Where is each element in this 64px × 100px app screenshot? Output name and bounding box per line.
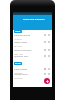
- staticText: Earlier: [15, 62, 21, 65]
- staticText: Weekly digest: [14, 41, 28, 44]
- staticText: Archive report: [14, 73, 28, 76]
- staticText: Monthly summary: [14, 49, 32, 52]
- staticText: Premium update: [14, 34, 31, 37]
- staticText: 12:30 AM: [14, 38, 23, 41]
- button[interactable]: Weekly digest: [13, 41, 52, 48]
- button[interactable]: Earlier: [14, 62, 22, 65]
- staticText: Yesterday: [14, 72, 23, 75]
- button[interactable]: Premium update: [13, 34, 52, 41]
- staticText: Quarterly plan: [14, 55, 28, 58]
- button[interactable]: Today: [14, 30, 22, 33]
- button[interactable]: Add: [44, 78, 50, 84]
- button[interactable]: Public and premium: [23, 18, 45, 21]
- staticText: Sun 09:40: [14, 77, 23, 80]
- staticText: Public release: [14, 68, 28, 71]
- button[interactable]: Monthly summary: [13, 49, 52, 56]
- button[interactable]: Quarterly plan: [13, 55, 52, 58]
- button[interactable]: Archive report: [13, 73, 52, 80]
- staticText: 09:15 AM: [14, 45, 23, 48]
- staticText: Mon 14:20: [14, 53, 24, 56]
- button[interactable]: Public release: [13, 68, 52, 75]
- staticText: Today: [15, 30, 21, 33]
